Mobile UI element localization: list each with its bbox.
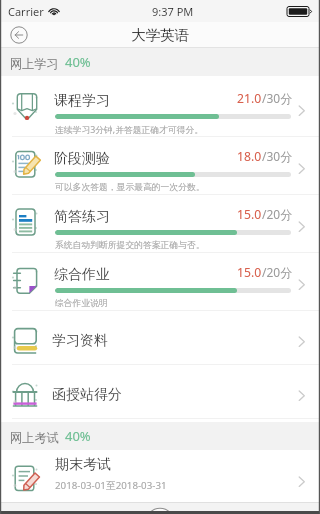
button[interactable]: 函授站得分: [0, 365, 320, 419]
staticText: 期末考试: [55, 456, 111, 474]
staticText: 学习资料: [52, 332, 108, 350]
staticText: 21.0: [237, 90, 262, 107]
button[interactable]: 综合作业: [0, 253, 320, 311]
staticText: 40%: [65, 53, 91, 71]
staticText: 40%: [65, 427, 91, 445]
staticText: 18.0: [237, 148, 262, 165]
staticText: 网上考试: [10, 430, 59, 445]
staticText: /30分: [262, 148, 293, 164]
button[interactable]: 学习资料: [0, 311, 320, 365]
staticText: 简答练习: [54, 208, 110, 226]
button[interactable]: Back: [7, 23, 31, 47]
button[interactable]: 课程学习: [0, 79, 320, 137]
staticText: /20分: [262, 206, 293, 222]
staticText: 15.0: [237, 206, 262, 223]
staticText: 连续学习3分钟,并答题正确才可得分。: [55, 124, 204, 136]
staticText: 15.0: [237, 264, 262, 281]
staticText: 2018-03-01至2018-03-31: [55, 479, 167, 492]
button[interactable]: 阶段测验: [0, 137, 320, 195]
staticText: 课程学习: [54, 92, 110, 110]
staticText: 综合作业说明: [55, 298, 108, 309]
staticText: Carrier: [8, 4, 44, 19]
staticText: 9:37 PM: [152, 4, 194, 19]
staticText: /30分: [262, 90, 293, 106]
button[interactable]: 简答练习: [0, 195, 320, 253]
staticText: 综合作业: [54, 266, 110, 284]
staticText: 阶段测验: [54, 150, 110, 168]
staticText: 网上学习: [10, 56, 59, 71]
staticText: /20分: [262, 264, 293, 280]
staticText: 系统自动判断所提交的答案正确与否。: [55, 240, 205, 251]
staticText: 函授站得分: [52, 386, 122, 404]
button[interactable]: 期末考试: [0, 450, 320, 505]
staticText: 可以多次答题，显示最高的一次分数。: [55, 182, 205, 193]
staticText: 大学英语: [131, 26, 189, 44]
